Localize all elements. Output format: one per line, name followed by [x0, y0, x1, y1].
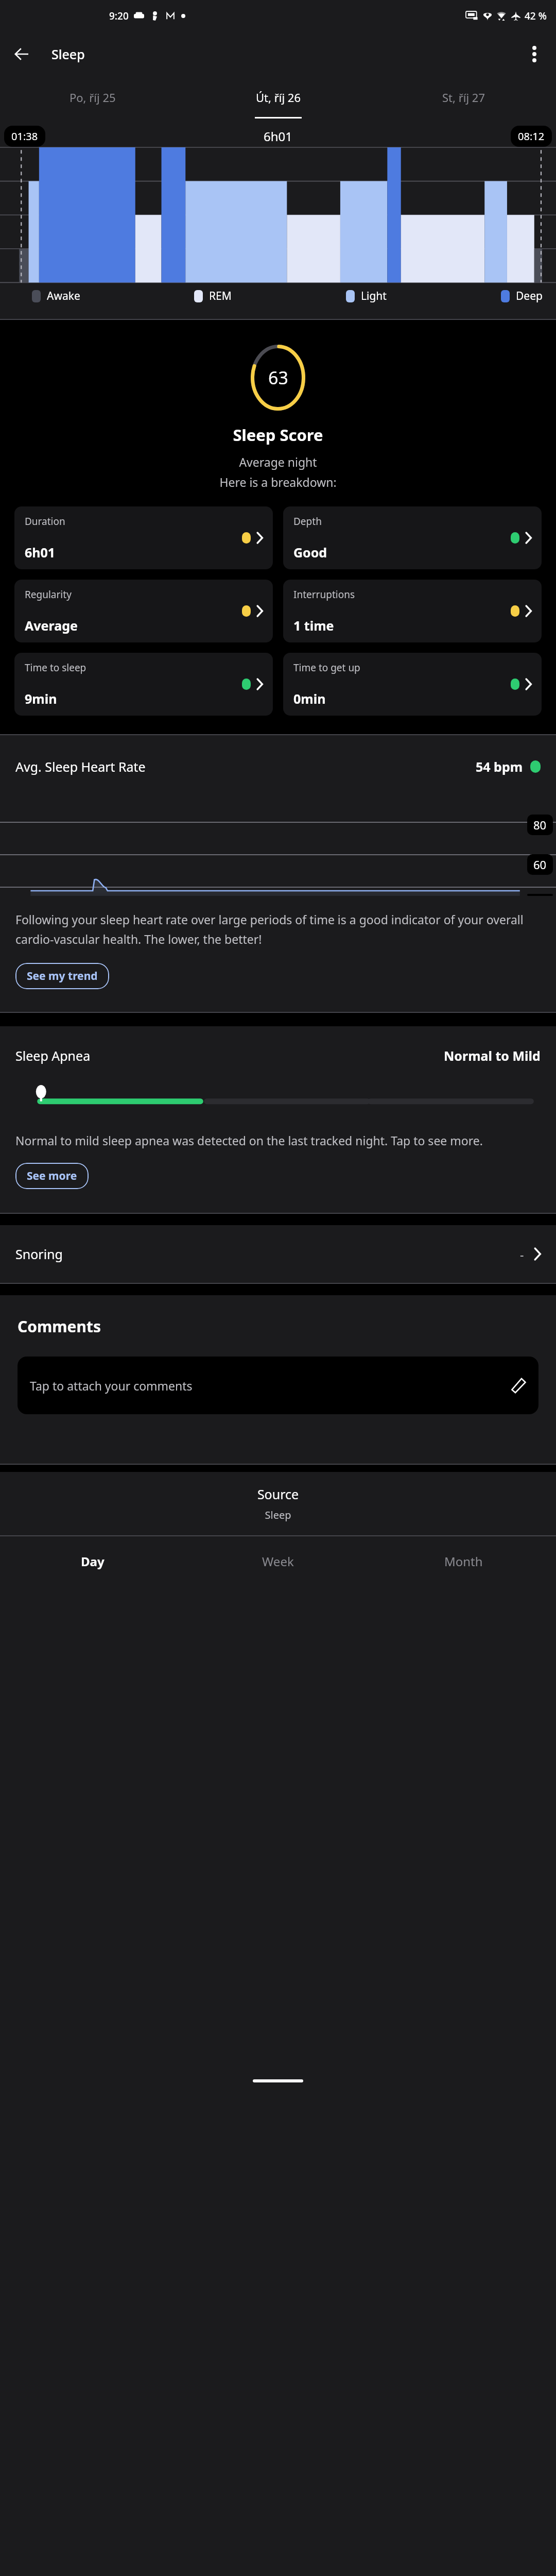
staticText: 9min [25, 690, 57, 707]
button[interactable]: See my trend [15, 963, 109, 989]
button[interactable]: Út, říj 26 [185, 76, 371, 118]
staticText: Po, říj 25 [69, 90, 116, 105]
staticText: Sleep Apnea [15, 1047, 91, 1064]
staticText: Deep [516, 289, 543, 303]
staticText: Tap to attach your comments [30, 1378, 193, 1394]
staticText: Comments [18, 1316, 101, 1337]
staticText: Week [262, 1553, 294, 1570]
button[interactable]: Tap to attach your comments [18, 1357, 538, 1414]
staticText: Light [361, 289, 387, 303]
staticText: Time to get up [293, 661, 360, 674]
staticText: Following your sleep heart rate over lar… [15, 911, 541, 947]
staticText: Normal to Mild [444, 1047, 541, 1064]
staticText: 54 bpm [476, 758, 523, 775]
staticText: 42 % [525, 9, 547, 23]
staticText: Awake [47, 289, 80, 303]
staticText: Average night [0, 454, 556, 470]
staticText: Depth [293, 515, 322, 528]
staticText: Sleep [51, 45, 85, 63]
staticText: 6h01 [264, 128, 293, 145]
staticText: Good [293, 544, 327, 561]
staticText: Average [25, 617, 78, 634]
staticText: Normal to mild sleep apnea was detected … [15, 1132, 483, 1148]
button[interactable]: Regularity [14, 580, 273, 642]
staticText: - [520, 1246, 524, 1262]
button[interactable]: More options [520, 40, 549, 69]
button[interactable]: Week [185, 1536, 371, 1586]
staticText: See my trend [27, 969, 98, 984]
staticText: Út, říj 26 [256, 90, 301, 105]
staticText: Day [81, 1553, 105, 1570]
staticText: 6h01 [25, 544, 56, 561]
staticText: See more [27, 1168, 77, 1183]
button[interactable]: St, říj 27 [371, 76, 556, 118]
staticText: 01:38 [11, 129, 38, 143]
button[interactable]: Time to sleep [14, 653, 273, 716]
button[interactable]: Day [0, 1536, 185, 1586]
staticText: Source [0, 1485, 556, 1503]
staticText: 08:12 [518, 129, 545, 143]
button[interactable]: Month [371, 1536, 556, 1586]
button[interactable]: Snoring [0, 1225, 556, 1283]
button[interactable]: Duration [14, 506, 273, 569]
button[interactable]: Time to get up [283, 653, 542, 716]
staticText: Month [444, 1553, 483, 1570]
button[interactable]: See more [15, 1163, 89, 1189]
button[interactable]: Interruptions [283, 580, 542, 642]
staticText: St, říj 27 [442, 90, 485, 105]
button[interactable]: Po, říj 25 [0, 76, 185, 118]
button[interactable]: Back [7, 40, 36, 69]
staticText: 63 [268, 366, 288, 389]
staticText: Here is a breakdown: [0, 474, 556, 490]
staticText: Snoring [15, 1245, 63, 1263]
staticText: Avg. Sleep Heart Rate [15, 758, 146, 775]
staticText: Time to sleep [25, 661, 86, 674]
staticText: 80 [533, 817, 547, 833]
staticText: 0min [293, 690, 326, 707]
staticText: Regularity [25, 588, 72, 601]
staticText: Sleep Score [0, 424, 556, 446]
staticText: Interruptions [293, 588, 355, 601]
staticText: Sleep [0, 1508, 556, 1522]
staticText: 9:20 [109, 9, 129, 23]
staticText: 1 time [293, 617, 334, 634]
button[interactable]: Depth [283, 506, 542, 569]
staticText: 60 [533, 857, 547, 872]
staticText: Duration [25, 515, 65, 528]
staticText: REM [209, 289, 232, 303]
